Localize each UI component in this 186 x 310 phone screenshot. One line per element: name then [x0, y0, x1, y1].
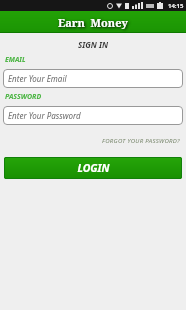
- staticText: Earn Money: [58, 15, 128, 30]
- button[interactable]: Enter Your Email: [3, 69, 183, 88]
- staticText: Enter Your Password: [8, 110, 81, 121]
- staticText: EMAIL: [5, 55, 26, 65]
- staticText: 14:15: [168, 2, 184, 10]
- staticText: LOGIN: [77, 161, 110, 175]
- staticText: Enter Your Email: [8, 73, 67, 84]
- button[interactable]: FORGOT YOUR PASSWORD?: [102, 137, 180, 145]
- button[interactable]: LOGIN: [4, 157, 182, 179]
- button[interactable]: Enter Your Password: [3, 106, 183, 125]
- staticText: PASSWORD: [5, 92, 42, 102]
- staticText: SIGN IN: [78, 39, 109, 50]
